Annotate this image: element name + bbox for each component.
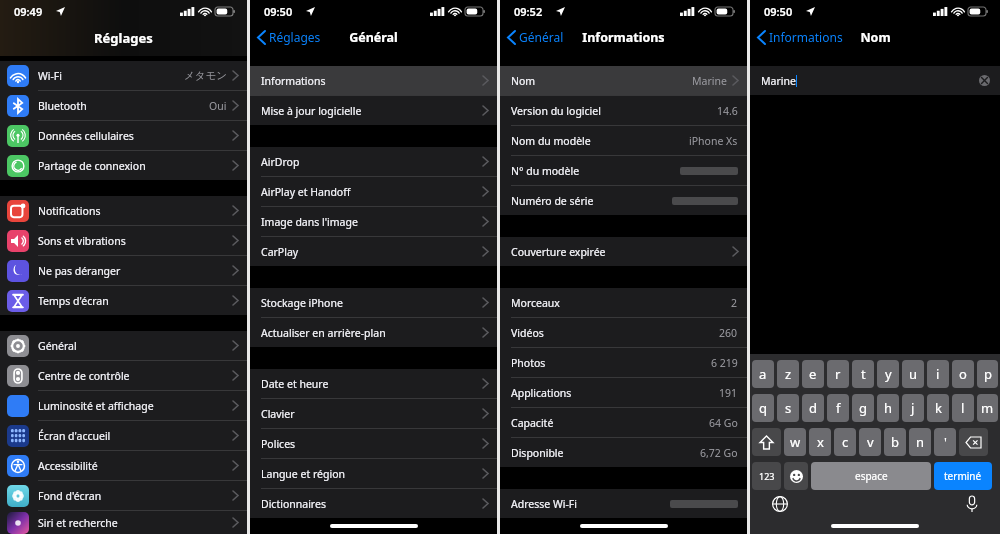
- button[interactable]: y: [877, 360, 899, 388]
- button[interactable]: Partage de connexion: [0, 151, 247, 180]
- button[interactable]: Numéro de série: [500, 186, 747, 215]
- button[interactable]: Disponible: [500, 438, 747, 467]
- button[interactable]: o: [952, 360, 974, 388]
- button[interactable]: Emoji: [784, 462, 808, 490]
- button[interactable]: Siri et recherche: [0, 511, 247, 534]
- button[interactable]: AirDrop: [250, 147, 497, 177]
- button[interactable]: m: [977, 394, 998, 422]
- button[interactable]: Polices: [250, 429, 497, 459]
- button[interactable]: AirPlay et Handoff: [250, 177, 497, 207]
- staticText: 191: [719, 386, 738, 400]
- button[interactable]: l: [952, 394, 974, 422]
- button[interactable]: b: [884, 428, 906, 456]
- staticText: 260: [719, 326, 738, 340]
- button[interactable]: Nom du modèle: [500, 126, 747, 156]
- button[interactable]: x: [809, 428, 831, 456]
- button[interactable]: h: [877, 394, 899, 422]
- button[interactable]: Clear text: [979, 75, 990, 86]
- button[interactable]: Date et heure: [250, 369, 497, 399]
- button[interactable]: Version du logiciel: [500, 96, 747, 126]
- button[interactable]: t: [852, 360, 874, 388]
- button[interactable]: Adresse Wi-Fi: [500, 489, 747, 518]
- button[interactable]: Général: [0, 331, 247, 361]
- staticText: m: [981, 399, 994, 417]
- button[interactable]: CarPlay: [250, 237, 497, 266]
- button[interactable]: Fond d'écran: [0, 481, 247, 511]
- staticText: x: [817, 433, 824, 451]
- button[interactable]: Dictionnaires: [250, 489, 497, 518]
- button[interactable]: v: [859, 428, 881, 456]
- button[interactable]: n: [909, 428, 931, 456]
- staticText: Numéro de série: [511, 194, 594, 208]
- staticText: i: [936, 365, 940, 383]
- button[interactable]: 123: [752, 462, 781, 490]
- button[interactable]: z: [777, 360, 799, 388]
- button[interactable]: Morceaux: [500, 288, 747, 318]
- staticText: Général: [38, 339, 77, 353]
- button[interactable]: Centre de contrôle: [0, 361, 247, 391]
- button[interactable]: Capacité: [500, 408, 747, 438]
- button[interactable]: d: [802, 394, 824, 422]
- button[interactable]: terminé: [934, 462, 992, 490]
- button[interactable]: Back to Général: [500, 22, 572, 52]
- button[interactable]: Image dans l'image: [250, 207, 497, 237]
- button[interactable]: Bluetooth: [0, 91, 247, 121]
- button[interactable]: Informations: [250, 66, 497, 96]
- staticText: u: [909, 365, 918, 383]
- button[interactable]: w: [784, 428, 806, 456]
- button[interactable]: Actualiser en arrière-plan: [250, 318, 497, 347]
- button[interactable]: i: [927, 360, 949, 388]
- button[interactable]: Applications: [500, 378, 747, 408]
- button[interactable]: Marine: [761, 66, 990, 95]
- button[interactable]: s: [777, 394, 799, 422]
- button[interactable]: a: [752, 360, 774, 388]
- staticText: e: [809, 365, 817, 383]
- button[interactable]: Mise à jour logicielle: [250, 96, 497, 125]
- button[interactable]: Dictation: [966, 496, 978, 512]
- button[interactable]: j: [902, 394, 924, 422]
- button[interactable]: e: [802, 360, 824, 388]
- button[interactable]: Change keyboard: [772, 496, 788, 512]
- button[interactable]: Clavier: [250, 399, 497, 429]
- button[interactable]: r: [827, 360, 849, 388]
- staticText: t: [861, 365, 866, 383]
- button[interactable]: Vidéos: [500, 318, 747, 348]
- staticText: Actualiser en arrière-plan: [261, 326, 386, 340]
- button[interactable]: f: [827, 394, 849, 422]
- button[interactable]: Shift: [752, 428, 781, 456]
- button[interactable]: c: [834, 428, 856, 456]
- button[interactable]: Luminosité et affichage: [0, 391, 247, 421]
- button[interactable]: Photos: [500, 348, 747, 378]
- staticText: terminé: [944, 469, 982, 483]
- button[interactable]: Couverture expirée: [500, 237, 747, 266]
- button[interactable]: Backspace: [959, 428, 988, 456]
- button[interactable]: espace: [811, 462, 931, 490]
- button[interactable]: Wi-Fi: [0, 61, 247, 91]
- staticText: Morceaux: [511, 296, 560, 310]
- button[interactable]: Sons et vibrations: [0, 226, 247, 256]
- button[interactable]: u: [902, 360, 924, 388]
- button[interactable]: Stockage iPhone: [250, 288, 497, 318]
- button[interactable]: Notifications: [0, 196, 247, 226]
- button[interactable]: p: [977, 360, 998, 388]
- button[interactable]: Données cellulaires: [0, 121, 247, 151]
- staticText: Données cellulaires: [38, 129, 134, 143]
- button[interactable]: Back to Informations: [750, 22, 851, 52]
- staticText: Wi-Fi: [38, 69, 63, 83]
- staticText: Marine: [692, 74, 727, 88]
- button[interactable]: g: [852, 394, 874, 422]
- button[interactable]: q: [752, 394, 774, 422]
- button[interactable]: Accessibilité: [0, 451, 247, 481]
- button[interactable]: k: [927, 394, 949, 422]
- staticText: Nom: [860, 29, 891, 46]
- button[interactable]: Temps d'écran: [0, 286, 247, 315]
- button[interactable]: Nom: [500, 66, 747, 96]
- staticText: Général: [519, 29, 564, 45]
- button[interactable]: Langue et région: [250, 459, 497, 489]
- button[interactable]: Ne pas déranger: [0, 256, 247, 286]
- button[interactable]: Back to Réglages: [250, 22, 329, 52]
- button[interactable]: Écran d'accueil: [0, 421, 247, 451]
- staticText: Oui: [209, 99, 227, 113]
- button[interactable]: ': [934, 428, 956, 456]
- button[interactable]: N° du modèle: [500, 156, 747, 186]
